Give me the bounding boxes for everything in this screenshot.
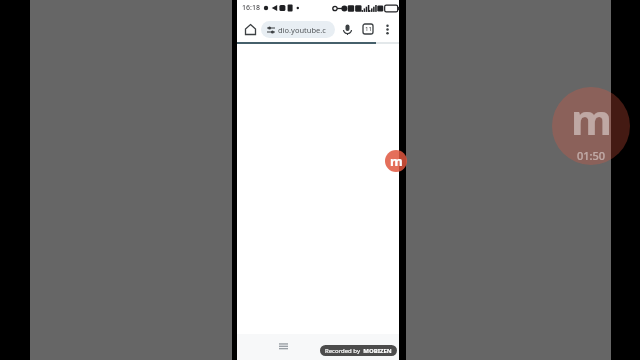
button[interactable]: dio.youtube.com: [261, 21, 335, 38]
staticText: m: [571, 90, 612, 147]
button[interactable]: More options: [379, 21, 395, 37]
staticText: 01:50: [577, 148, 606, 163]
button[interactable]: Switch tabs: [359, 20, 377, 38]
button[interactable]: Voice search: [338, 20, 356, 38]
staticText: dio.youtube.com: [278, 25, 329, 35]
staticText: m: [390, 152, 403, 170]
staticText: MOBIZEN: [363, 347, 392, 355]
button[interactable]: Menu: [273, 337, 293, 357]
button[interactable]: Mobizen recorder: [385, 150, 407, 172]
staticText: 11: [365, 25, 372, 33]
button[interactable]: Home: [241, 20, 259, 38]
staticText: Recorded by: [325, 347, 360, 355]
staticText: 16:18: [242, 3, 260, 13]
